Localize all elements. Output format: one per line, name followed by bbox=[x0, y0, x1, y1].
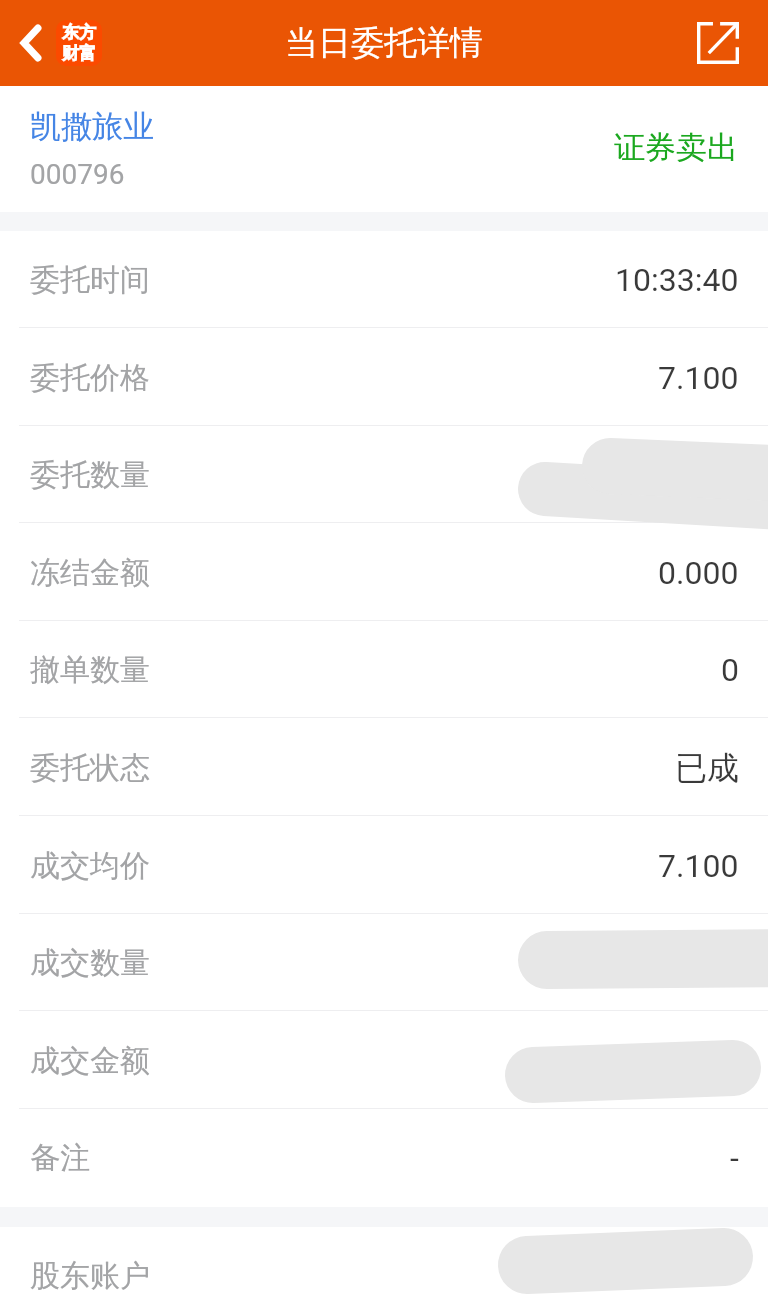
staticText: 委托时间 bbox=[30, 261, 150, 299]
staticText: 0 bbox=[721, 651, 739, 689]
button[interactable]: 成交数量 bbox=[0, 914, 768, 1011]
staticText: 当日委托详情 bbox=[285, 22, 483, 64]
staticText: 委托数量 bbox=[30, 456, 150, 494]
staticText: 委托状态 bbox=[30, 749, 150, 787]
staticText: 0.000 bbox=[658, 554, 739, 592]
button[interactable]: 股东账户 bbox=[0, 1227, 768, 1311]
button[interactable]: 委托状态 bbox=[0, 719, 768, 816]
button[interactable]: 成交均价 bbox=[0, 817, 768, 914]
staticText: - bbox=[730, 1139, 739, 1177]
staticText: 7.100 bbox=[658, 359, 739, 397]
button[interactable]: 冻结金额 bbox=[0, 524, 768, 621]
staticText: 成交数量 bbox=[30, 944, 150, 982]
staticText: 成交金额 bbox=[30, 1042, 150, 1080]
button[interactable]: Back bbox=[0, 0, 112, 86]
button[interactable]: 成交金额 bbox=[0, 1012, 768, 1109]
staticText: 7.100 bbox=[658, 847, 739, 885]
staticText: 000796 bbox=[30, 158, 125, 191]
staticText: 东方 bbox=[62, 22, 96, 43]
staticText: 已成 bbox=[675, 748, 739, 788]
staticText: 凯撒旅业 bbox=[30, 107, 154, 146]
staticText: 10:33:40 bbox=[615, 261, 739, 299]
staticText: 证券卖出 bbox=[614, 128, 738, 167]
button[interactable]: 备注 bbox=[0, 1109, 768, 1207]
button[interactable]: 凯撒旅业 bbox=[0, 86, 768, 212]
staticText: 撤单数量 bbox=[30, 651, 150, 689]
button[interactable]: Share bbox=[668, 0, 768, 86]
staticText: 股东账户 bbox=[30, 1257, 150, 1295]
button[interactable]: 委托时间 bbox=[0, 231, 768, 328]
staticText: 备注 bbox=[30, 1139, 90, 1177]
staticText: 委托价格 bbox=[30, 359, 150, 397]
staticText: 财富 bbox=[62, 43, 96, 64]
button[interactable]: 委托价格 bbox=[0, 329, 768, 426]
button[interactable]: 撤单数量 bbox=[0, 621, 768, 718]
staticText: 冻结金额 bbox=[30, 554, 150, 592]
button[interactable]: 委托数量 bbox=[0, 426, 768, 523]
staticText: 成交均价 bbox=[30, 847, 150, 885]
